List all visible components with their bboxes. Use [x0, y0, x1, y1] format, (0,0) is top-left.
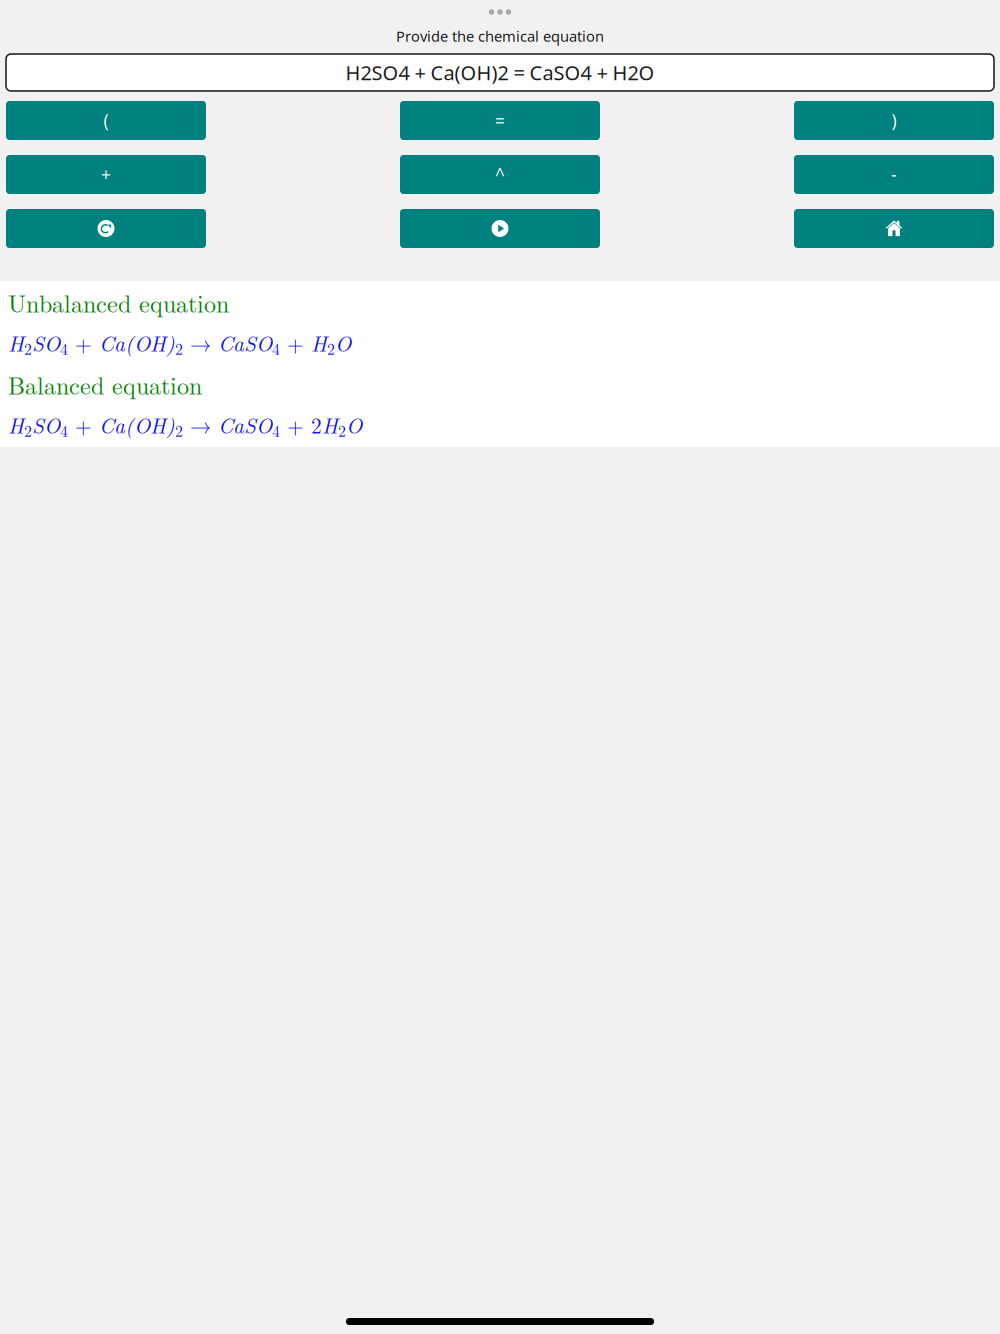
button[interactable]: Minus — [794, 155, 994, 194]
button[interactable]: H2SO4 + Ca(OH)2 = CaSO4 + H2O — [0, 54, 1000, 91]
staticText: - — [891, 163, 897, 186]
button[interactable]: Balance equation — [400, 209, 600, 248]
staticText: Unbalanced equation — [8, 285, 229, 319]
staticText: Balanced equation — [8, 367, 202, 401]
staticText: Provide the chemical equation — [396, 26, 604, 46]
staticText: ( — [103, 109, 108, 132]
button[interactable]: Open parenthesis — [6, 101, 206, 140]
staticText: ) — [891, 109, 896, 132]
staticText: + — [101, 163, 111, 186]
staticText: H2SO4 + Ca(OH)2 → CaSO4 + 2H2O — [8, 410, 362, 441]
staticText: H2SO4 + Ca(OH)2 → CaSO4 + H2O — [8, 328, 351, 359]
button[interactable]: Reset — [6, 209, 206, 248]
staticText: = — [495, 109, 505, 132]
staticText: H2SO4 + Ca(OH)2 = CaSO4 + H2O — [345, 59, 654, 86]
button[interactable]: Plus — [6, 155, 206, 194]
staticText: ^ — [495, 163, 505, 186]
button[interactable]: Caret — [400, 155, 600, 194]
button[interactable]: Equals — [400, 101, 600, 140]
button[interactable]: Home — [794, 209, 994, 248]
button[interactable]: Close parenthesis — [794, 101, 994, 140]
